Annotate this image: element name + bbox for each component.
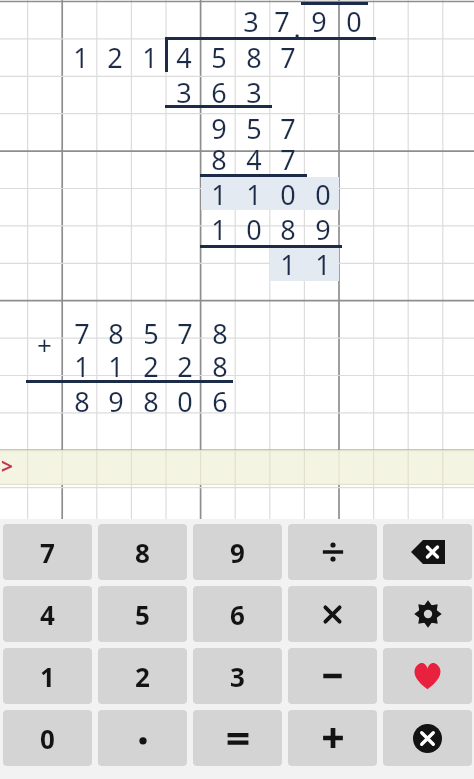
button[interactable]: 5 [98,586,187,642]
button[interactable]: Subtract [288,648,377,704]
staticText: 9 [315,211,331,248]
staticText: > [1,452,14,481]
staticText: 1 [280,246,296,283]
button[interactable]: Clear [383,710,472,766]
staticText: 0 [280,176,296,213]
staticText: 7 [40,535,55,570]
staticText: 9 [108,383,124,420]
button[interactable]: 7 [3,524,92,580]
staticText: 1 [246,176,262,213]
staticText: 6 [212,383,228,420]
button[interactable]: Divide [288,524,377,580]
staticText: 1 [74,348,90,385]
staticText: 7 [280,141,296,178]
staticText: 8 [74,383,90,420]
staticText: 1 [211,176,227,213]
staticText: . [293,9,301,46]
button[interactable]: 6 [193,586,282,642]
staticText: + [37,327,52,362]
staticText: 7 [280,110,296,147]
staticText: 8 [280,211,296,248]
staticText: 1 [315,246,331,283]
staticText: 2 [135,659,150,694]
staticText: 8 [108,315,124,352]
button[interactable]: 8 [98,524,187,580]
button[interactable]: Add [288,710,377,766]
staticText: 3 [230,659,245,694]
button[interactable]: Multiply [288,586,377,642]
button[interactable]: 0 [3,710,92,766]
button[interactable]: Decimal point [98,710,187,766]
staticText: 0 [346,3,362,40]
staticText: 2 [143,348,159,385]
staticText: 9 [311,3,327,40]
staticText: 8 [212,315,228,352]
staticText: 7 [74,315,90,352]
staticText: 4 [176,39,192,76]
staticText: 7 [274,3,290,40]
button[interactable]: 2 [98,648,187,704]
button[interactable]: 9 [193,524,282,580]
staticText: 8 [211,141,227,178]
staticText: 7 [177,315,193,352]
staticText: 0 [315,176,331,213]
button[interactable]: 3 [193,648,282,704]
staticText: 5 [246,110,262,147]
staticText: 1 [73,39,89,76]
staticText: 8 [135,535,150,570]
staticText: 4 [40,597,55,632]
button[interactable]: Backspace [383,524,472,580]
staticText: 9 [211,110,227,147]
staticText: 8 [212,348,228,385]
button[interactable]: Favourite [383,648,472,704]
button[interactable]: 1 [3,648,92,704]
staticText: 1 [108,348,124,385]
staticText: 5 [211,39,227,76]
staticText: 2 [107,39,123,76]
staticText: 3 [246,74,262,111]
staticText: 2 [177,348,193,385]
staticText: 1 [40,659,55,694]
staticText: 3 [176,74,192,111]
staticText: 9 [230,535,245,570]
staticText: 0 [40,721,55,756]
staticText: 7 [280,39,296,76]
staticText: 5 [143,315,159,352]
staticText: 8 [246,39,262,76]
staticText: 8 [143,383,159,420]
button[interactable]: Settings [383,586,472,642]
button[interactable]: Equals [193,710,282,766]
staticText: 4 [246,141,262,178]
staticText: 5 [135,597,150,632]
staticText: 6 [230,597,245,632]
staticText: 6 [211,74,227,111]
staticText: 0 [246,211,262,248]
button[interactable]: 4 [3,586,92,642]
staticText: 1 [211,211,227,248]
button[interactable]: > [0,450,474,485]
staticText: 3 [243,3,259,40]
staticText: 0 [177,383,193,420]
staticText: 1 [142,39,158,76]
